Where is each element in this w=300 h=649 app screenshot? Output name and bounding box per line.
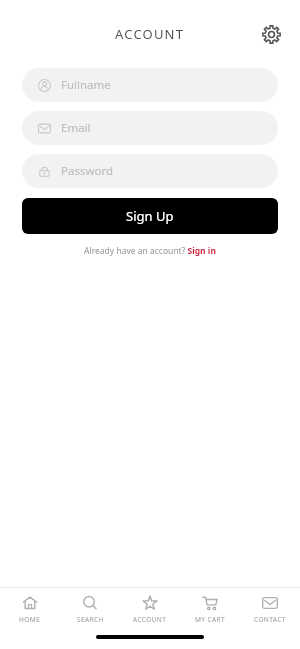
staticText: Password: [61, 163, 114, 179]
staticText: Already have an account? Sign in: [84, 245, 216, 257]
staticText: Fullname: [61, 77, 111, 93]
button[interactable]: Already have an account? Sign in: [0, 245, 300, 257]
staticText: Email: [61, 120, 91, 136]
staticText: SEARCH: [77, 615, 104, 624]
button[interactable]: MY CART: [180, 591, 240, 628]
button[interactable]: Email: [22, 111, 278, 145]
button[interactable]: CONTACT: [240, 591, 300, 628]
button[interactable]: Sign Up: [22, 198, 278, 234]
staticText: ACCOUNT: [133, 615, 167, 624]
staticText: HOME: [19, 615, 41, 624]
staticText: CONTACT: [254, 615, 286, 624]
button[interactable]: SEARCH: [60, 591, 120, 628]
button[interactable]: Password: [22, 154, 278, 188]
button[interactable]: Settings: [254, 17, 288, 51]
staticText: MY CART: [195, 615, 225, 624]
staticText: ACCOUNT: [115, 25, 185, 43]
button[interactable]: HOME: [0, 591, 60, 628]
button[interactable]: Fullname: [22, 68, 278, 102]
staticText: Sign Up: [126, 207, 174, 225]
button[interactable]: ACCOUNT: [120, 591, 180, 628]
